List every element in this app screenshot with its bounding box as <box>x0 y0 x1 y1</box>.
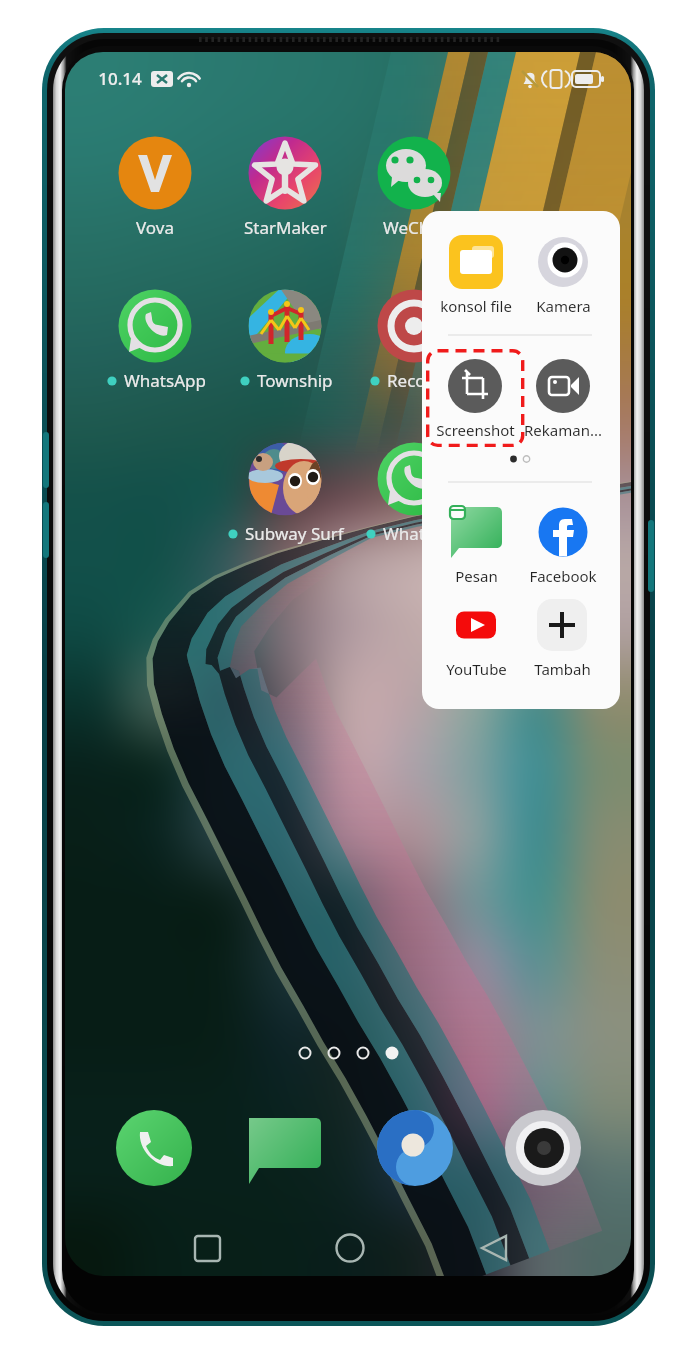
staticText: Recorder <box>387 369 460 392</box>
staticText: WeChat <box>383 216 445 239</box>
staticText: 10.14 <box>98 67 142 90</box>
button[interactable]: Screenshot <box>432 352 518 440</box>
staticText: WhatsApp <box>124 369 206 392</box>
button[interactable]: Facebook <box>520 498 606 586</box>
button[interactable]: Kamera <box>520 228 606 316</box>
button[interactable]: Rekaman... <box>520 352 606 440</box>
button[interactable]: WhatsApp <box>350 434 478 546</box>
staticText: Vova <box>136 216 174 239</box>
button[interactable]: Tambah <box>519 591 605 679</box>
staticText: WhatsApp <box>383 522 465 545</box>
button[interactable]: Pesan <box>433 498 519 586</box>
button[interactable]: konsol file <box>433 228 519 316</box>
button[interactable]: Vova <box>91 128 219 240</box>
button[interactable]: WhatsApp <box>91 281 219 393</box>
staticText: Tambah <box>534 659 591 679</box>
button[interactable]: YouTube <box>433 591 519 679</box>
staticText: Subway Surf <box>245 522 344 545</box>
button[interactable]: Recorder <box>350 281 478 393</box>
staticText: YouTube <box>446 659 507 679</box>
button[interactable]: Recents <box>170 1218 245 1276</box>
staticText: Facebook <box>529 566 597 586</box>
staticText: Pesan <box>455 566 498 586</box>
button[interactable]: Back <box>456 1218 531 1276</box>
button[interactable]: WeChat <box>350 128 478 240</box>
button[interactable]: Township <box>221 281 349 393</box>
staticText: StarMaker <box>244 216 327 239</box>
button[interactable]: Subway Surf <box>221 434 349 546</box>
staticText: Screenshot <box>436 420 515 440</box>
staticText: Kamera <box>536 296 591 316</box>
button[interactable]: Browser <box>370 1103 460 1193</box>
button[interactable]: Camera <box>498 1103 588 1193</box>
button[interactable]: Home <box>312 1218 387 1276</box>
button[interactable]: Messages <box>240 1103 330 1193</box>
staticText: konsol file <box>440 296 512 316</box>
staticText: Rekaman... <box>524 420 602 440</box>
button[interactable]: Phone <box>109 1103 199 1193</box>
button[interactable]: StarMaker <box>221 128 349 240</box>
staticText: Township <box>257 369 333 392</box>
